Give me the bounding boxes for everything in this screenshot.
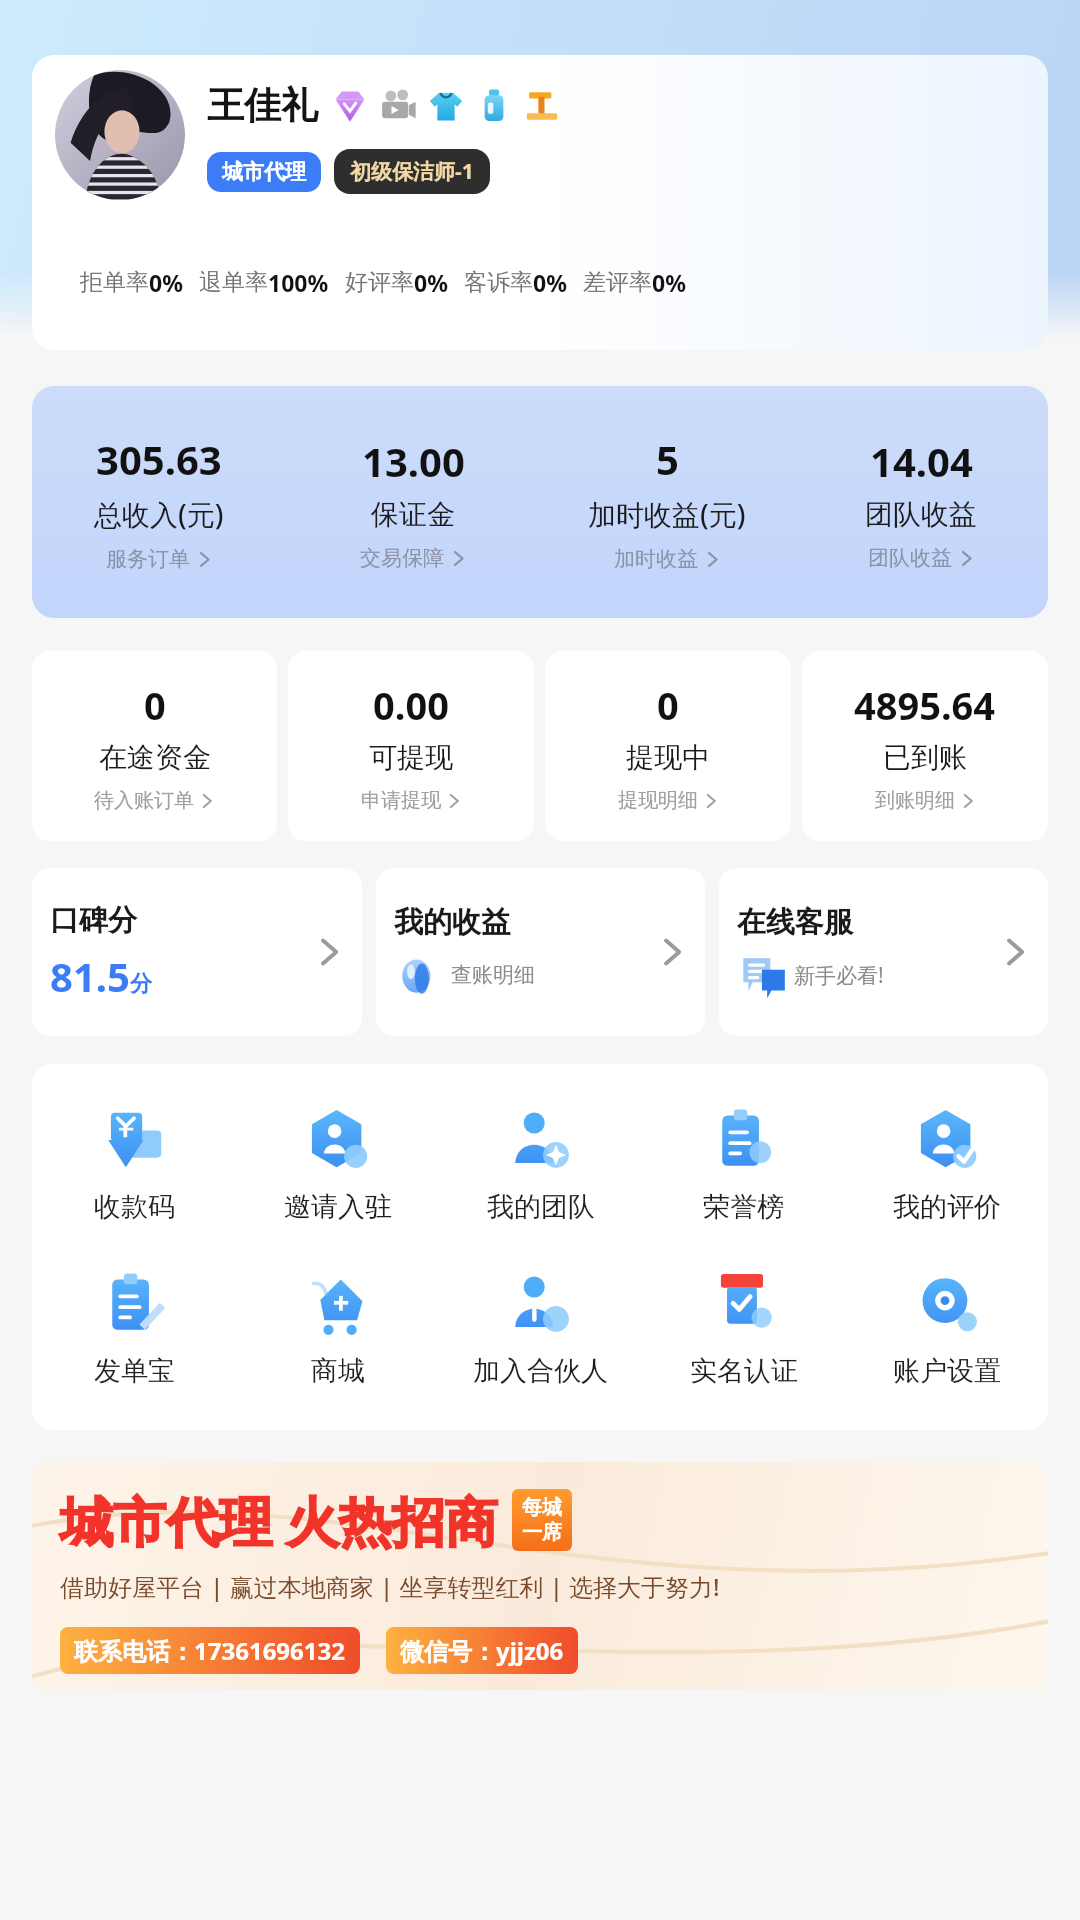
staticText: 交易保障 <box>360 545 444 571</box>
button[interactable]: 在线客服 <box>719 868 1048 1036</box>
staticText: 到账明细 <box>875 788 955 813</box>
staticText: 城市代理 <box>222 159 306 185</box>
staticText: 口碑分 <box>50 902 137 939</box>
staticText: 拒单率 <box>80 268 149 297</box>
button[interactable]: 4895.64 <box>802 651 1048 841</box>
staticText: 分 <box>130 970 152 998</box>
staticText: 王佳礼 <box>207 82 318 129</box>
button[interactable]: 我的评价 <box>845 1106 1048 1224</box>
staticText: 查账明细 <box>451 962 535 988</box>
button[interactable]: 我的团队 <box>439 1106 642 1224</box>
staticText: 实名认证 <box>690 1354 798 1388</box>
button[interactable]: 实名认证 <box>642 1270 845 1388</box>
staticText: 发单宝 <box>94 1354 175 1388</box>
staticText: 商城 <box>311 1354 365 1388</box>
staticText: 邀请入驻 <box>284 1190 392 1224</box>
staticText: 0 <box>657 679 679 731</box>
staticText: 305.63 <box>96 432 222 486</box>
staticText: 4895.64 <box>854 679 996 731</box>
staticText: 一席 <box>522 1520 562 1545</box>
staticText: 微信号：yjjz06 <box>400 1634 564 1667</box>
button[interactable]: 5 <box>540 386 794 618</box>
staticText: 13.00 <box>362 434 465 488</box>
staticText: 加时收益(元) <box>588 495 746 533</box>
button[interactable]: 发单宝 <box>32 1270 236 1388</box>
staticText: 0 <box>144 679 166 731</box>
staticText: 0% <box>533 267 567 298</box>
button[interactable]: 口碑分 <box>32 868 362 1036</box>
staticText: 收款码 <box>94 1190 175 1224</box>
button[interactable]: 0.00 <box>288 651 534 841</box>
button[interactable]: 加入合伙人 <box>439 1270 642 1388</box>
staticText: 14.04 <box>870 434 973 488</box>
staticText: 服务订单 <box>106 546 190 572</box>
staticText: 待入账订单 <box>94 788 194 813</box>
staticText: 已到账 <box>883 740 967 775</box>
staticText: 0% <box>652 267 686 298</box>
staticText: 申请提现 <box>361 788 441 813</box>
button[interactable]: 邀请入驻 <box>236 1106 439 1224</box>
staticText: 荣誉榜 <box>703 1190 784 1224</box>
staticText: 客诉率 <box>464 268 533 297</box>
button[interactable]: 城市代理 火热招商 <box>32 1462 1048 1690</box>
staticText: 在线客服 <box>737 904 853 941</box>
button[interactable]: 荣誉榜 <box>642 1106 845 1224</box>
staticText: 我的评价 <box>893 1190 1001 1224</box>
staticText: 5 <box>656 432 679 486</box>
staticText: 提现中 <box>626 740 710 775</box>
staticText: 0% <box>149 267 183 298</box>
button[interactable]: 账户设置 <box>845 1270 1048 1388</box>
button[interactable]: 商城 <box>236 1270 439 1388</box>
button[interactable]: 王佳礼 <box>32 55 1048 350</box>
staticText: 在途资金 <box>99 740 211 775</box>
staticText: 账户设置 <box>893 1354 1001 1388</box>
staticText: 保证金 <box>371 497 455 532</box>
staticText: 团队收益 <box>868 545 952 571</box>
button[interactable]: 0 <box>32 651 277 841</box>
staticText: 初级保洁师-1 <box>350 157 474 186</box>
staticText: 加入合伙人 <box>473 1354 608 1388</box>
staticText: 团队收益 <box>865 497 977 532</box>
staticText: 新手必看! <box>794 961 884 990</box>
button[interactable]: 305.63 <box>32 386 286 618</box>
staticText: 可提现 <box>369 740 453 775</box>
staticText: 我的团队 <box>487 1190 595 1224</box>
staticText: 退单率 <box>199 268 268 297</box>
staticText: 100% <box>268 267 329 298</box>
staticText: 加时收益 <box>614 546 698 572</box>
staticText: 借助好屋平台 | 赢过本地商家 | 坐享转型红利 | 选择大于努力! <box>60 1570 720 1603</box>
staticText: 城市代理 火热招商 <box>60 1484 498 1556</box>
button[interactable]: 13.00 <box>286 386 540 618</box>
button[interactable]: 14.04 <box>794 386 1048 618</box>
staticText: 每城 <box>522 1495 562 1520</box>
staticText: 总收入(元) <box>94 495 224 533</box>
staticText: 0% <box>414 267 448 298</box>
staticText: 我的收益 <box>394 904 510 941</box>
staticText: 差评率 <box>583 268 652 297</box>
button[interactable]: 收款码 <box>32 1106 236 1224</box>
staticText: 81.5 <box>50 949 130 1003</box>
staticText: 0.00 <box>373 679 449 731</box>
staticText: 联系电话：17361696132 <box>74 1634 346 1667</box>
button[interactable]: 0 <box>545 651 791 841</box>
staticText: 提现明细 <box>618 788 698 813</box>
staticText: 好评率 <box>345 268 414 297</box>
button[interactable]: 我的收益 <box>376 868 705 1036</box>
